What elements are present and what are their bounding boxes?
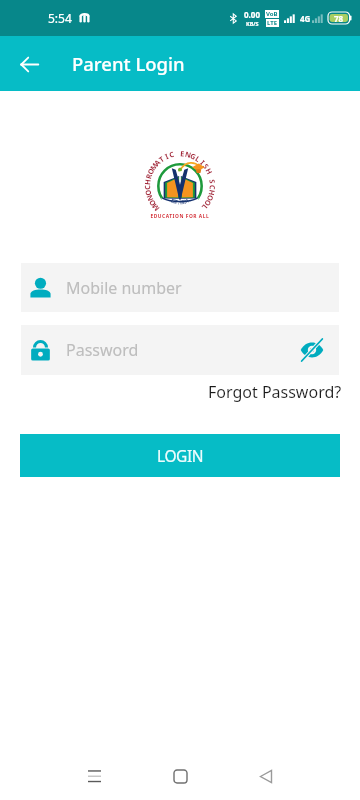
button[interactable]: Home: [160, 756, 200, 796]
staticText: Password: [66, 339, 139, 361]
button[interactable]: LOGIN: [20, 434, 340, 477]
staticText: VoB: [266, 10, 278, 18]
button[interactable]: Show password: [297, 335, 327, 365]
staticText: Forgot Password?: [208, 381, 342, 403]
button[interactable]: Back: [246, 756, 286, 796]
staticText: KB/S: [246, 20, 259, 27]
staticText: 5:54: [48, 10, 72, 26]
button[interactable]: Password: [21, 325, 339, 375]
staticText: Parent Login: [72, 51, 185, 76]
button[interactable]: Mobile number: [21, 263, 339, 312]
staticText: 0.00: [244, 9, 260, 20]
staticText: Mobile number: [66, 277, 182, 299]
staticText: 78: [334, 13, 344, 24]
button[interactable]: Forgot Password?: [208, 379, 342, 405]
staticText: LTE: [267, 19, 278, 27]
staticText: 4G: [300, 13, 311, 24]
staticText: LOGIN: [157, 445, 204, 466]
button[interactable]: Recents: [74, 756, 114, 796]
button[interactable]: Back: [8, 43, 50, 85]
